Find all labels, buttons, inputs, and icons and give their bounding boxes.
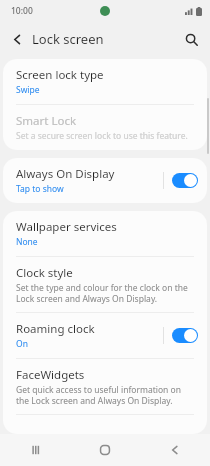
staticText: Set the type and colour for the clock on… [16, 282, 194, 304]
staticText: Swipe [16, 84, 40, 96]
staticText: Roaming clock [16, 321, 95, 337]
button[interactable]: Wallpaper services [3, 211, 207, 256]
button[interactable]: Clock style [3, 257, 207, 312]
staticText: 10:00 [11, 5, 33, 17]
button[interactable]: Roaming clock switch, on [172, 328, 198, 343]
staticText: Clock style [16, 265, 73, 281]
staticText: Tap to show [16, 183, 64, 195]
button[interactable]: Search [178, 26, 204, 52]
staticText: Screen lock type [16, 67, 104, 83]
staticText: On [16, 338, 28, 350]
button[interactable]: Always On Display [3, 158, 207, 203]
button[interactable]: Navigate up [5, 27, 29, 51]
staticText: Get quick access to useful information o… [16, 384, 194, 406]
button[interactable]: Roaming clock [3, 313, 207, 358]
staticText: Set a secure screen lock to use this fea… [16, 130, 188, 142]
button[interactable]: Smart Lock [3, 105, 207, 150]
button[interactable]: Always On Display switch, on [172, 173, 198, 188]
button[interactable]: Recents [0, 434, 70, 466]
staticText: None [16, 236, 38, 248]
button[interactable]: Back [140, 434, 210, 466]
staticText: Always On Display [16, 166, 115, 182]
staticText: Wallpaper services [16, 219, 117, 235]
staticText: Lock screen [32, 30, 104, 48]
button[interactable]: FaceWidgets [3, 359, 207, 414]
button[interactable]: Home [70, 434, 140, 466]
staticText: FaceWidgets [16, 367, 85, 383]
button[interactable]: Screen lock type [3, 59, 207, 104]
staticText: Smart Lock [16, 113, 77, 129]
